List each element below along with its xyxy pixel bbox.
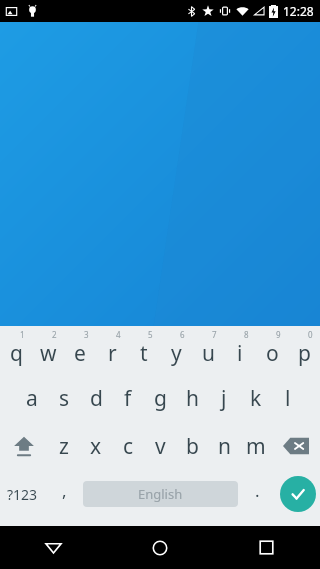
button[interactable]: 6 — [160, 326, 192, 374]
button[interactable]: Backspace — [272, 422, 320, 470]
button[interactable]: d — [80, 374, 112, 422]
button[interactable]: l — [272, 374, 304, 422]
staticText: r — [108, 339, 117, 368]
staticText: . — [255, 479, 260, 502]
staticText: 1 — [20, 329, 25, 340]
staticText: 9 — [276, 329, 281, 340]
staticText: f — [124, 384, 132, 413]
staticText: b — [186, 432, 199, 461]
staticText: l — [285, 384, 291, 413]
button[interactable]: English — [83, 481, 238, 507]
staticText: 5 — [148, 329, 153, 340]
staticText: 3 — [84, 329, 89, 340]
button[interactable]: m — [240, 422, 272, 470]
button[interactable]: 3 — [64, 326, 96, 374]
button[interactable]: a — [16, 374, 48, 422]
button[interactable]: g — [144, 374, 176, 422]
button[interactable]: Shift — [0, 422, 48, 470]
button[interactable]: 9 — [256, 326, 288, 374]
button[interactable]: 5 — [128, 326, 160, 374]
button[interactable]: . — [238, 470, 276, 518]
button[interactable]: f — [112, 374, 144, 422]
staticText: c — [123, 432, 134, 461]
button[interactable]: Back — [0, 526, 106, 569]
staticText: i — [237, 339, 243, 368]
button[interactable]: Home — [106, 526, 213, 569]
button[interactable]: z — [48, 422, 80, 470]
button[interactable]: 8 — [224, 326, 256, 374]
staticText: a — [26, 384, 38, 413]
button[interactable]: , — [45, 470, 83, 518]
staticText: m — [246, 432, 266, 461]
staticText: u — [202, 339, 215, 368]
staticText: k — [250, 384, 262, 413]
staticText: n — [218, 432, 231, 461]
button[interactable]: 7 — [192, 326, 224, 374]
button[interactable]: 2 — [32, 326, 64, 374]
button[interactable]: 1 — [0, 326, 32, 374]
staticText: 8 — [244, 329, 249, 340]
staticText: w — [40, 339, 57, 368]
button[interactable]: k — [240, 374, 272, 422]
button[interactable]: Enter — [276, 470, 320, 518]
button[interactable]: Recents — [213, 526, 320, 569]
staticText: t — [140, 339, 148, 368]
button[interactable]: 4 — [96, 326, 128, 374]
staticText: q — [10, 339, 23, 368]
button[interactable]: j — [208, 374, 240, 422]
button[interactable]: v — [144, 422, 176, 470]
staticText: o — [266, 339, 279, 368]
staticText: y — [171, 339, 182, 368]
staticText: e — [74, 339, 86, 368]
staticText: 0 — [308, 329, 313, 340]
staticText: z — [59, 432, 69, 461]
button[interactable]: h — [176, 374, 208, 422]
button[interactable]: n — [208, 422, 240, 470]
staticText: v — [155, 432, 166, 461]
staticText: d — [90, 384, 103, 413]
button[interactable]: s — [48, 374, 80, 422]
staticText: h — [186, 384, 199, 413]
staticText: 2 — [52, 329, 57, 340]
button[interactable]: x — [80, 422, 112, 470]
staticText: 7 — [212, 329, 217, 340]
staticText: p — [298, 339, 311, 368]
staticText: , — [62, 479, 67, 502]
button[interactable]: b — [176, 422, 208, 470]
staticText: g — [154, 384, 167, 413]
staticText: x — [90, 432, 102, 461]
staticText: 12:28 — [283, 3, 314, 19]
staticText: 4 — [116, 329, 121, 340]
button[interactable]: ?123 — [0, 470, 45, 518]
button[interactable]: 0 — [288, 326, 320, 374]
staticText: s — [59, 384, 70, 413]
staticText: 6 — [180, 329, 185, 340]
staticText: English — [138, 485, 183, 503]
staticText: ?123 — [7, 485, 38, 504]
button[interactable]: c — [112, 422, 144, 470]
staticText: j — [221, 384, 227, 413]
